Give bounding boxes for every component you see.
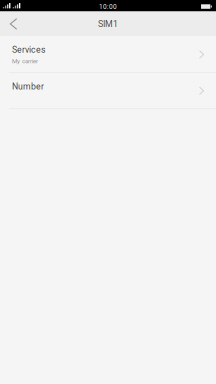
staticText: SIM1 (98, 19, 118, 29)
button[interactable]: Services (0, 36, 216, 72)
staticText: 10:00 (99, 3, 117, 10)
staticText: Number (12, 81, 44, 92)
button[interactable]: Number (0, 73, 216, 108)
staticText: My carrier (12, 57, 38, 65)
button[interactable]: Back (0, 11, 27, 36)
staticText: Services (12, 45, 45, 55)
